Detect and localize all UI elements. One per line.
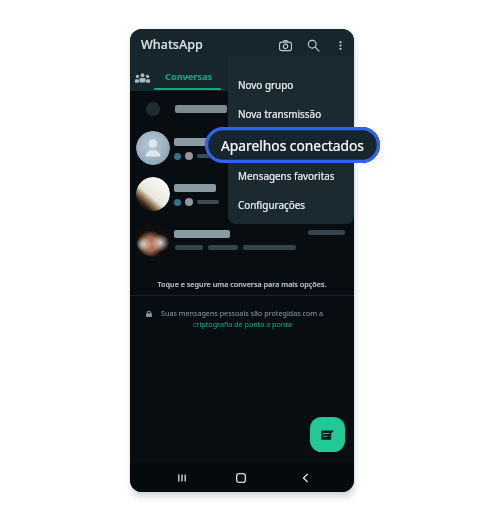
button[interactable]: Mensagens favoritas: [228, 162, 354, 188]
staticText: Mensagens favoritas: [238, 169, 335, 182]
button[interactable]: Conversas: [155, 64, 222, 89]
button[interactable]: Search: [302, 34, 324, 56]
staticText: Toque e segure uma conversa para mais op…: [130, 279, 354, 289]
button[interactable]: Camera: [274, 34, 296, 56]
button[interactable]: Aparelhos conectados: [205, 127, 380, 163]
staticText: Aparelhos conectados: [221, 136, 364, 155]
button[interactable]: Novo grupo: [228, 71, 354, 97]
staticText: Novo grupo: [238, 78, 294, 91]
button[interactable]: [130, 217, 354, 263]
staticText: WhatsApp: [141, 36, 203, 53]
button[interactable]: Home: [229, 463, 253, 492]
button[interactable]: [130, 125, 354, 171]
button[interactable]: Recent apps: [170, 463, 194, 492]
button[interactable]: Configurações: [228, 191, 354, 217]
button[interactable]: [130, 95, 354, 123]
button[interactable]: Nova transmissão: [228, 100, 354, 126]
staticText: criptografia de ponta a ponta: [193, 319, 292, 329]
staticText: Configurações: [238, 198, 305, 211]
staticText: Nova transmissão: [238, 107, 322, 120]
button[interactable]: New chat: [310, 417, 345, 452]
staticText: Suas mensagens pessoais são protegidas c…: [161, 308, 323, 318]
button[interactable]: Back: [294, 463, 318, 492]
button[interactable]: [130, 171, 354, 217]
button[interactable]: More options: [329, 34, 351, 56]
button[interactable]: Communities: [132, 65, 152, 88]
staticText: Conversas: [165, 70, 213, 83]
